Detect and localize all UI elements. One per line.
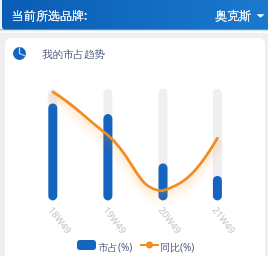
- staticText: 18W49: [46, 204, 75, 237]
- staticText: 同比(%): [160, 240, 195, 254]
- staticText: 21W49: [210, 204, 239, 237]
- button[interactable]: 当前所选品牌:: [2, 0, 268, 30]
- staticText: 19W49: [101, 204, 130, 237]
- staticText: 奥克斯: [215, 8, 251, 23]
- staticText: 我的市占趋势: [42, 48, 105, 61]
- button[interactable]: Market share series: [77, 240, 96, 250]
- staticText: 市占(%): [98, 240, 133, 254]
- other: Choose brand: [256, 11, 265, 20]
- other: Chart: [13, 47, 26, 60]
- staticText: 当前所选品牌:: [12, 7, 88, 23]
- staticText: 20W49: [156, 204, 185, 237]
